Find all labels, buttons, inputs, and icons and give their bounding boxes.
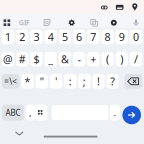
staticText: =\<: [4, 76, 17, 87]
staticText: ;: [83, 74, 86, 88]
staticText: 9: [119, 30, 125, 44]
button[interactable]: Translate: [87, 16, 100, 29]
button[interactable]: 3: [30, 30, 43, 44]
button[interactable]: Clipboard: [98, 1, 111, 14]
button[interactable]: 7: [87, 30, 100, 44]
button[interactable]: &: [59, 52, 71, 66]
button[interactable]: Send: [122, 106, 141, 124]
button[interactable]: +: [87, 52, 100, 66]
button[interactable]: 8: [101, 30, 114, 44]
staticText: !: [97, 74, 100, 88]
staticText: ?: [110, 74, 115, 88]
button[interactable]: 6: [73, 30, 85, 44]
button[interactable]: _: [44, 52, 57, 66]
staticText: &: [61, 52, 69, 66]
button[interactable]: #: [16, 52, 28, 66]
button[interactable]: 9: [115, 30, 128, 44]
button[interactable]: Location: [128, 1, 141, 14]
staticText: /: [134, 52, 138, 66]
button[interactable]: Emoji: [35, 105, 47, 121]
button[interactable]: ): [115, 52, 128, 66]
button[interactable]: Space: [51, 105, 109, 121]
staticText: ): [120, 52, 123, 66]
staticText: 0: [133, 30, 139, 44]
button[interactable]: 0: [130, 30, 142, 44]
staticText: @: [3, 52, 13, 66]
staticText: *: [24, 74, 30, 88]
button[interactable]: Settings: [65, 16, 78, 29]
staticText: (: [106, 52, 109, 66]
button[interactable]: 1: [2, 30, 14, 44]
staticText: ,: [29, 106, 32, 119]
button[interactable]: 5: [59, 30, 71, 44]
button[interactable]: (: [101, 52, 114, 66]
staticText: 1: [5, 30, 11, 44]
button[interactable]: ?: [106, 74, 119, 89]
button[interactable]: Hide keyboard: [14, 130, 24, 137]
button[interactable]: =\<: [2, 74, 20, 89]
button[interactable]: *: [21, 74, 34, 89]
button[interactable]: !: [92, 74, 105, 89]
button[interactable]: Voice input: [129, 16, 142, 29]
button[interactable]: ': [50, 74, 62, 89]
staticText: ABC: [6, 107, 21, 118]
staticText: 6: [76, 30, 82, 44]
button[interactable]: Apps: [0, 16, 13, 29]
staticText: 3: [33, 30, 39, 44]
staticText: 8: [104, 30, 110, 44]
staticText: 2: [19, 30, 25, 44]
button[interactable]: Backspace: [124, 74, 142, 89]
button[interactable]: $: [30, 52, 43, 66]
button[interactable]: /: [130, 52, 142, 66]
button[interactable]: ;: [78, 74, 91, 89]
staticText: $: [33, 52, 39, 66]
button[interactable]: .: [110, 105, 120, 121]
staticText: _: [48, 52, 53, 66]
button[interactable]: 4: [44, 30, 57, 44]
staticText: 7: [90, 30, 96, 44]
staticText: :: [69, 74, 72, 88]
staticText: #: [19, 52, 26, 66]
button[interactable]: ,: [26, 105, 35, 121]
button[interactable]: :: [64, 74, 76, 89]
button[interactable]: ABC: [2, 105, 24, 121]
button[interactable]: 2: [16, 30, 28, 44]
staticText: 5: [62, 30, 68, 44]
staticText: ": [40, 74, 44, 88]
staticText: ': [55, 74, 57, 88]
button[interactable]: Stickers: [40, 16, 53, 29]
button[interactable]: @: [2, 52, 14, 66]
button[interactable]: Payments: [113, 1, 126, 14]
button[interactable]: GIF: [17, 16, 31, 29]
staticText: +: [90, 52, 96, 66]
staticText: GIF: [19, 18, 30, 27]
staticText: -: [78, 52, 81, 66]
button[interactable]: -: [73, 52, 85, 66]
button[interactable]: ": [35, 74, 48, 89]
button[interactable]: Search: [107, 16, 120, 29]
staticText: .: [113, 106, 116, 119]
staticText: 4: [48, 30, 54, 44]
